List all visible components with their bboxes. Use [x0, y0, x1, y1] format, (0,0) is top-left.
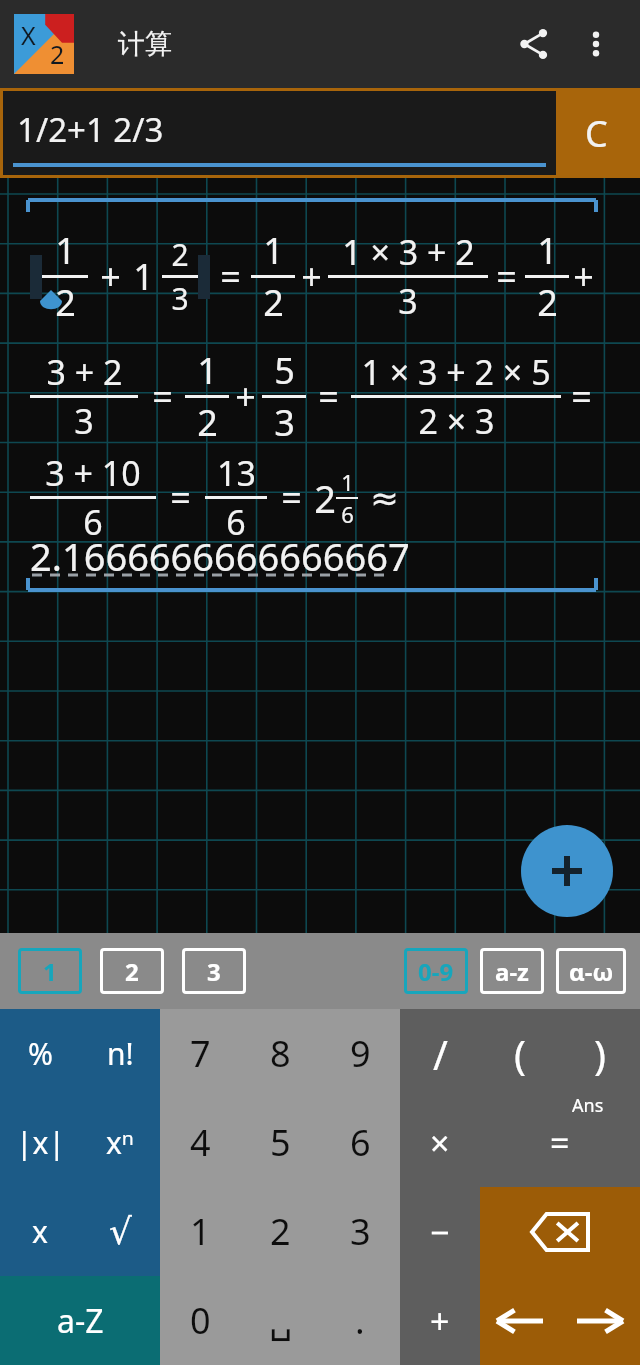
button[interactable]: 4 — [160, 1098, 240, 1187]
staticText: . — [355, 1296, 365, 1345]
staticText: 7 — [190, 1029, 211, 1078]
staticText: 2 — [263, 278, 284, 327]
staticText: 6 — [226, 499, 246, 545]
staticText: = — [571, 372, 592, 421]
staticText: 2 — [197, 398, 218, 447]
staticText: 3 — [74, 398, 94, 444]
staticText: = — [152, 372, 173, 421]
staticText: X — [21, 18, 36, 52]
staticText: / — [433, 1027, 448, 1081]
staticText: 13 — [217, 450, 256, 496]
staticText: 5 — [274, 346, 295, 395]
button[interactable]: ␣ — [240, 1276, 320, 1365]
button[interactable]: % — [0, 1009, 80, 1098]
staticText: 1 — [190, 1207, 211, 1256]
staticText: 3 — [207, 955, 221, 988]
staticText: 6 — [341, 499, 354, 529]
staticText: 3 — [398, 278, 418, 324]
button[interactable]: . — [320, 1276, 400, 1365]
button[interactable]: α-ω — [556, 948, 626, 994]
button[interactable]: 0-9 — [404, 948, 468, 994]
button[interactable]: ) — [560, 1009, 640, 1098]
staticText: n! — [107, 1033, 134, 1074]
staticText: × — [430, 1120, 450, 1166]
staticText: 8 — [270, 1029, 291, 1078]
button[interactable]: = — [480, 1098, 640, 1187]
button[interactable]: xⁿ — [80, 1098, 160, 1187]
staticText: + — [301, 252, 322, 301]
staticText: C — [585, 109, 608, 158]
staticText: 1/2+1 2/3 — [17, 107, 164, 152]
button[interactable]: 6 — [320, 1098, 400, 1187]
staticText: 1 — [43, 955, 57, 988]
staticText: 1 — [197, 346, 218, 395]
button[interactable]: |x| — [0, 1098, 80, 1187]
staticText: 9 — [350, 1029, 371, 1078]
staticText: 3 + 10 — [45, 450, 141, 496]
staticText: 1 — [133, 252, 154, 301]
button[interactable]: More options — [568, 16, 624, 72]
button[interactable]: ( — [480, 1009, 560, 1098]
button[interactable]: a-z — [480, 948, 544, 994]
staticText: = — [496, 252, 517, 301]
staticText: 0-9 — [418, 955, 454, 988]
button[interactable]: a-Z — [0, 1276, 160, 1365]
button[interactable]: x — [0, 1187, 80, 1276]
staticText: α-ω — [569, 955, 614, 988]
button[interactable]: 1 — [18, 948, 82, 994]
staticText: 6 — [350, 1118, 371, 1167]
button[interactable]: App icon — [14, 14, 74, 74]
button[interactable]: 9 — [320, 1009, 400, 1098]
button[interactable]: / — [400, 1009, 480, 1098]
button[interactable]: 1/2+1 2/3 — [3, 91, 556, 175]
staticText: 0 — [190, 1296, 211, 1345]
staticText: 3 — [171, 278, 189, 319]
button[interactable]: − — [400, 1187, 480, 1276]
button[interactable]: 2 — [240, 1187, 320, 1276]
staticText: + — [430, 1298, 450, 1344]
button[interactable]: 1 — [160, 1187, 240, 1276]
staticText: = — [170, 473, 191, 522]
staticText: ) — [594, 1027, 606, 1081]
button[interactable]: Backspace — [480, 1187, 640, 1276]
staticText: 4 — [190, 1118, 211, 1167]
staticText: 2 — [55, 278, 76, 327]
staticText: 1 × 3 + 2 — [342, 229, 475, 275]
staticText: 3 — [350, 1207, 371, 1256]
button[interactable]: + — [400, 1276, 480, 1365]
staticText: 2 — [50, 37, 65, 71]
button[interactable]: 0 — [160, 1276, 240, 1365]
button[interactable]: Right — [560, 1276, 640, 1365]
button[interactable]: 5 — [240, 1098, 320, 1187]
button[interactable]: Add — [521, 825, 613, 917]
staticText: √ — [109, 1211, 132, 1253]
staticText: 5 — [270, 1118, 291, 1167]
staticText: 计算 — [118, 27, 172, 61]
button[interactable]: 8 — [240, 1009, 320, 1098]
staticText: ␣ — [269, 1300, 292, 1342]
button[interactable]: √ — [80, 1187, 160, 1276]
staticText: 2.1666666666666667 — [30, 530, 410, 582]
staticText: 1 × 3 + 2 × 5 — [361, 349, 551, 395]
button[interactable]: 3 — [320, 1187, 400, 1276]
button[interactable]: 2 — [100, 948, 164, 994]
staticText: 2 — [270, 1207, 291, 1256]
staticText: = — [550, 1120, 570, 1166]
button[interactable]: C — [553, 88, 640, 178]
button[interactable]: Share — [506, 16, 562, 72]
staticText: 2 — [125, 955, 139, 988]
staticText: 2 — [314, 472, 336, 524]
staticText: ≈ — [370, 478, 399, 518]
staticText: + — [573, 252, 594, 301]
staticText: x — [32, 1211, 48, 1252]
button[interactable]: 3 — [182, 948, 246, 994]
staticText: 2 × 3 — [418, 398, 495, 444]
staticText: a-Z — [57, 1299, 104, 1343]
button[interactable]: Left — [480, 1276, 560, 1365]
button[interactable]: × — [400, 1098, 480, 1187]
staticText: % — [28, 1033, 53, 1074]
button[interactable]: n! — [80, 1009, 160, 1098]
button[interactable]: 7 — [160, 1009, 240, 1098]
staticText: 3 + 2 — [46, 349, 123, 395]
staticText: 2 — [171, 234, 189, 275]
